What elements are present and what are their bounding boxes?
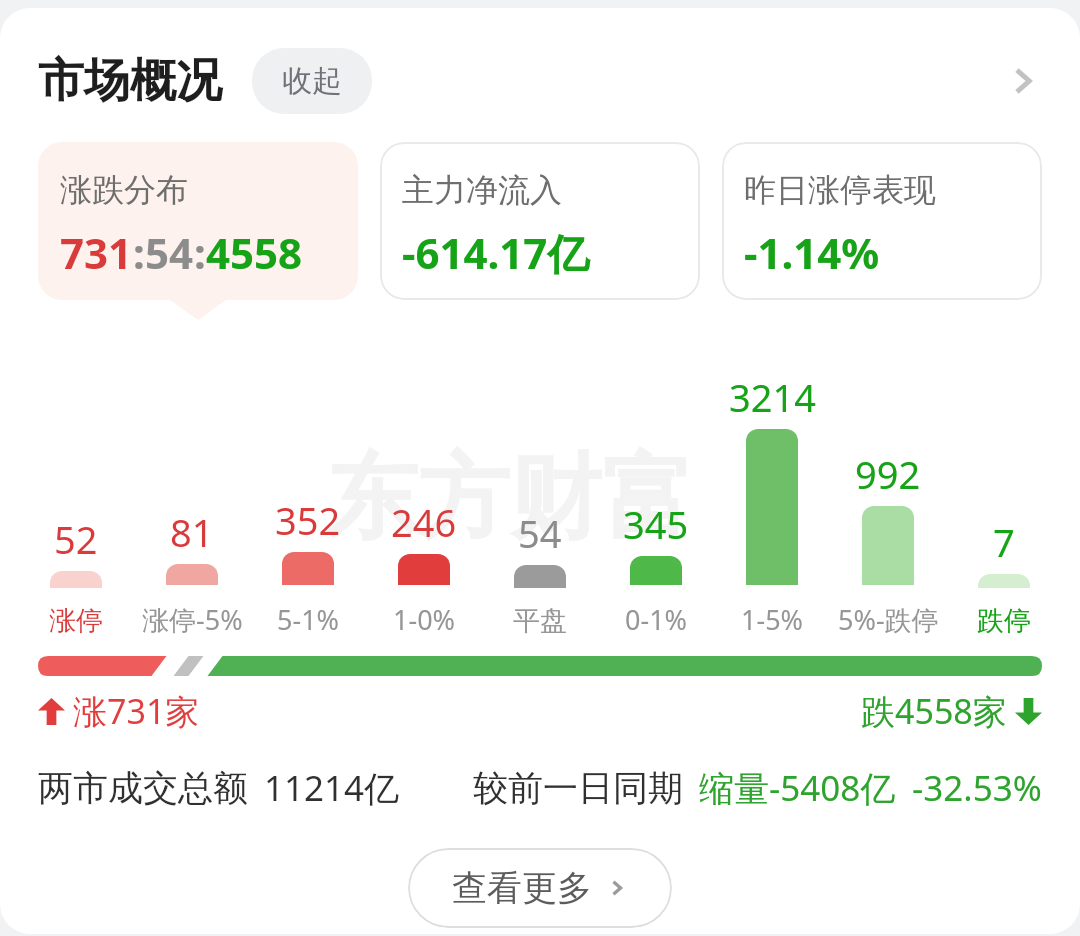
staticText: : <box>194 224 206 281</box>
button[interactable]: 主力净流入 <box>380 142 700 300</box>
staticText: 52 <box>54 513 98 565</box>
button[interactable]: 涨跌分布 <box>38 142 358 300</box>
staticText: 731 <box>60 224 133 281</box>
staticText: 查看更多 <box>452 866 592 910</box>
staticText: 246 <box>391 496 457 548</box>
button[interactable]: 收起 <box>252 48 372 114</box>
staticText: 跌4558家 <box>861 688 1007 734</box>
staticText: 涨731家 <box>73 688 200 734</box>
staticText: 主力净流入 <box>402 170 562 210</box>
staticText: 1-0% <box>393 601 456 638</box>
staticText: -614.17亿 <box>402 224 590 281</box>
staticText: -1.14% <box>744 224 880 281</box>
staticText: 992 <box>855 448 921 500</box>
staticText: 涨停 <box>49 604 103 638</box>
staticText: : <box>133 224 145 281</box>
staticText: 平盘 <box>513 604 567 638</box>
staticText: 跌停 <box>977 604 1031 638</box>
staticText: 54 <box>145 224 194 281</box>
staticText: 昨日涨停表现 <box>744 170 936 210</box>
staticText: 5%-跌停 <box>838 601 939 638</box>
staticText: 收起 <box>282 62 342 100</box>
staticText: 5-1% <box>277 601 340 638</box>
button[interactable]: 展开市场概况 <box>990 49 1054 113</box>
staticText: 345 <box>623 498 689 550</box>
staticText: 涨停-5% <box>142 601 243 638</box>
staticText: 两市成交总额 <box>38 766 248 810</box>
button[interactable]: 查看更多 <box>408 848 672 928</box>
staticText: 较前一日同期 <box>473 766 683 810</box>
staticText: 7 <box>993 516 1015 568</box>
staticText: 0-1% <box>625 601 688 638</box>
staticText: 54 <box>518 507 562 559</box>
staticText: 81 <box>170 506 214 558</box>
staticText: 缩量-5408亿 <box>699 764 896 812</box>
staticText: 352 <box>275 494 341 546</box>
staticText: 4558 <box>206 224 303 281</box>
staticText: -32.53% <box>912 764 1042 812</box>
staticText: 东方财富 <box>326 440 694 556</box>
staticText: 市场概况 <box>38 52 222 110</box>
staticText: 11214亿 <box>264 764 400 812</box>
staticText: 1-5% <box>741 601 804 638</box>
staticText: 3214 <box>729 371 816 423</box>
staticText: 涨跌分布 <box>60 170 188 210</box>
button[interactable]: 昨日涨停表现 <box>722 142 1042 300</box>
